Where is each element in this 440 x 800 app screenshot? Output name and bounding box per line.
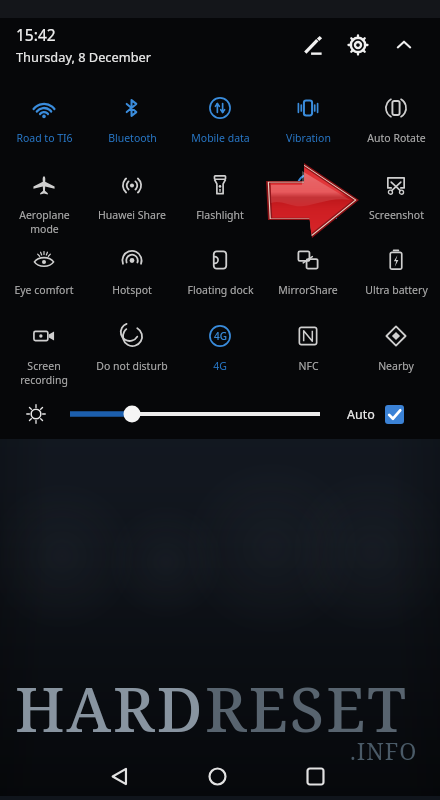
- button[interactable]: Screenshot: [352, 157, 440, 247]
- button[interactable]: NFC: [264, 308, 352, 398]
- staticText: Huawei Share: [98, 208, 166, 222]
- staticText: Thursday, 8 December: [16, 48, 152, 65]
- staticText: Flashlight: [196, 208, 244, 222]
- staticText: Bluetooth: [108, 131, 157, 145]
- staticText: HARD: [15, 666, 205, 750]
- button[interactable]: Collapse: [386, 27, 422, 63]
- staticText: Mobile data: [191, 131, 250, 145]
- staticText: NFC: [298, 359, 319, 373]
- staticText: Eye comfort: [14, 283, 74, 297]
- button[interactable]: Road to TI6: [0, 80, 88, 170]
- button[interactable]: Information: [264, 157, 352, 247]
- button[interactable]: Brightness: [62, 402, 328, 426]
- button[interactable]: Back: [95, 752, 143, 800]
- button[interactable]: Settings: [340, 27, 376, 63]
- button[interactable]: Eye comfort: [0, 232, 88, 322]
- staticText: .INFO: [350, 735, 418, 766]
- staticText: Floating dock: [187, 283, 254, 297]
- button[interactable]: Home: [193, 752, 241, 800]
- staticText: Hotspot: [112, 283, 152, 297]
- staticText: Auto Rotate: [367, 131, 426, 145]
- staticText: RESET: [205, 666, 408, 750]
- button[interactable]: Bluetooth: [88, 80, 176, 170]
- button[interactable]: Vibration: [264, 80, 352, 170]
- button[interactable]: 4G: [176, 308, 264, 398]
- staticText: Do not disturb: [96, 359, 168, 373]
- button[interactable]: Flashlight: [176, 157, 264, 247]
- button[interactable]: Aeroplane mode: [0, 157, 88, 247]
- button[interactable]: Nearby: [352, 308, 440, 398]
- staticText: Road to TI6: [16, 131, 73, 145]
- staticText: Screen recording: [20, 359, 68, 387]
- staticText: Information: [278, 208, 338, 222]
- staticText: Vibration: [286, 131, 331, 145]
- staticText: Auto: [347, 406, 375, 423]
- staticText: Screenshot: [369, 208, 424, 222]
- staticText: MirrorShare: [278, 283, 338, 297]
- button[interactable]: Screen recording: [0, 308, 88, 398]
- button[interactable]: Auto: [347, 405, 404, 424]
- button[interactable]: Recent apps: [291, 752, 339, 800]
- button[interactable]: Floating dock: [176, 232, 264, 322]
- staticText: Nearby: [378, 359, 414, 373]
- button[interactable]: Auto Rotate: [352, 80, 440, 170]
- button[interactable]: Do not disturb: [88, 308, 176, 398]
- button[interactable]: Hotspot: [88, 232, 176, 322]
- staticText: Aeroplane mode: [19, 208, 70, 236]
- button[interactable]: MirrorShare: [264, 232, 352, 322]
- button[interactable]: Edit: [295, 27, 331, 63]
- button[interactable]: Huawei Share: [88, 157, 176, 247]
- staticText: 4G: [214, 329, 227, 343]
- button[interactable]: Ultra battery: [352, 232, 440, 322]
- staticText: 4G: [213, 359, 227, 373]
- staticText: Ultra battery: [365, 283, 428, 297]
- staticText: 15:42: [16, 24, 56, 45]
- button[interactable]: Mobile data: [176, 80, 264, 170]
